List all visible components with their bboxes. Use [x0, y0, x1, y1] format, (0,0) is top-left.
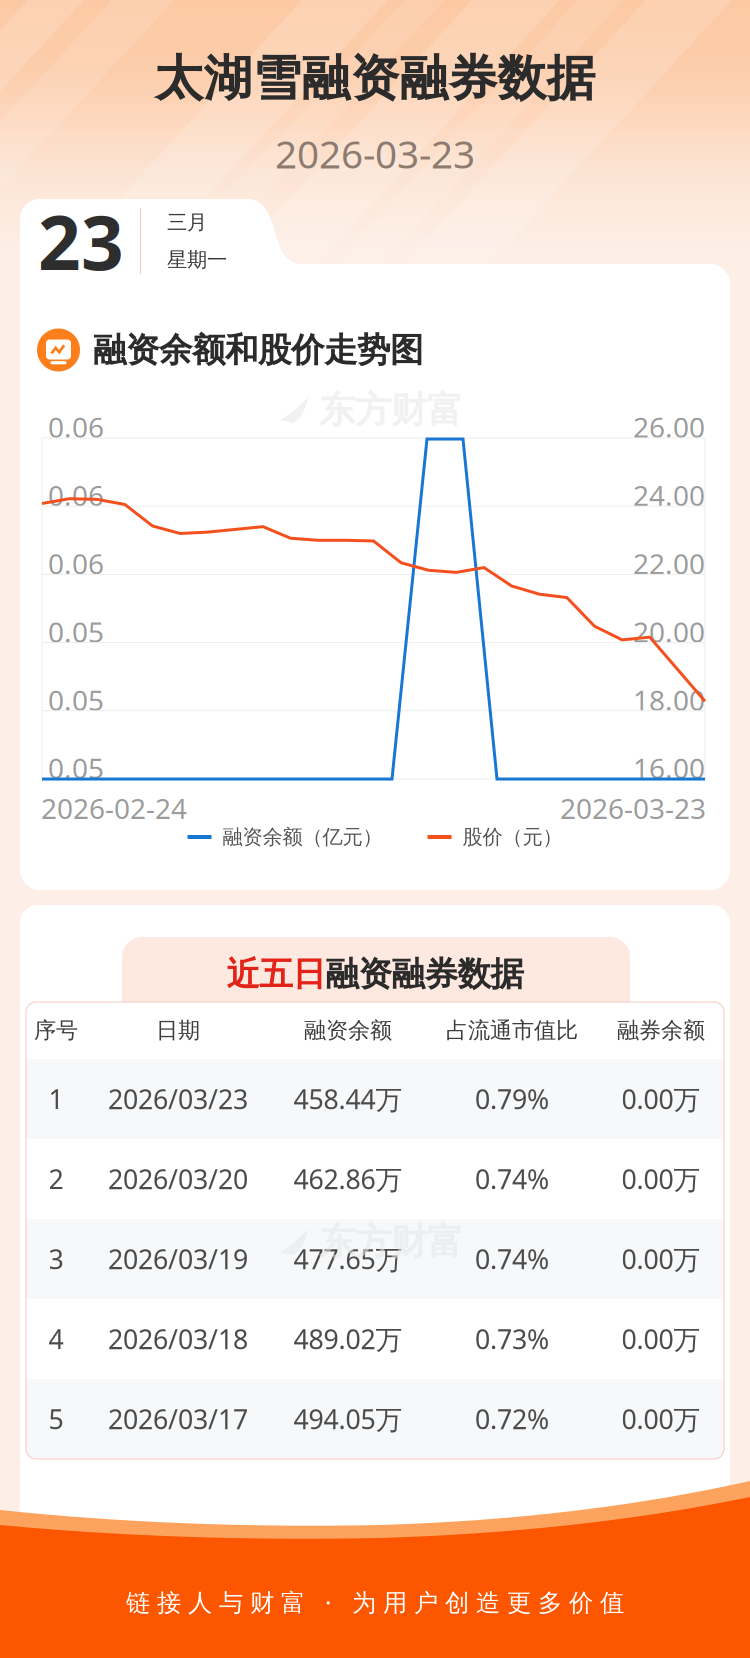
staticText: 融资融券数据: [325, 953, 523, 995]
staticText: 489.02万: [293, 1321, 402, 1357]
staticText: 2026/03/17: [108, 1401, 248, 1437]
staticText: 4: [48, 1321, 63, 1357]
staticText: 494.05万: [293, 1401, 402, 1437]
staticText: 太湖雪融资融券数据: [154, 48, 595, 109]
staticText: 东方财富: [319, 1219, 463, 1265]
staticText: 462.86万: [293, 1161, 402, 1197]
staticText: 日期: [156, 1017, 200, 1044]
staticText: 0.00万: [621, 1081, 700, 1117]
staticText: 近五日: [226, 953, 325, 995]
staticText: 2026/03/19: [108, 1241, 248, 1277]
staticText: 融资余额: [304, 1017, 392, 1044]
staticText: 23: [38, 190, 124, 292]
staticText: 0.05: [48, 681, 104, 719]
staticText: 16.00: [633, 749, 705, 787]
staticText: 融资余额（亿元）: [222, 824, 382, 850]
staticText: 24.00: [633, 476, 705, 514]
staticText: 0.00万: [621, 1401, 700, 1437]
staticText: 26.00: [633, 408, 705, 446]
staticText: 2026-02-24: [41, 789, 187, 827]
staticText: 477.65万: [293, 1241, 402, 1277]
staticText: 0.73%: [475, 1321, 549, 1357]
staticText: 1: [48, 1081, 63, 1117]
staticText: 三月: [167, 209, 207, 235]
staticText: 20.00: [633, 612, 705, 651]
staticText: 0.06: [48, 408, 104, 446]
staticText: 2026/03/18: [108, 1321, 248, 1357]
staticText: 0.74%: [475, 1161, 549, 1197]
staticText: 0.72%: [475, 1401, 549, 1437]
staticText: 0.74%: [475, 1241, 549, 1277]
staticText: 2026-03-23: [560, 789, 706, 827]
staticText: 0.05: [48, 612, 104, 651]
staticText: 0.00万: [621, 1321, 700, 1357]
staticText: 股价（元）: [462, 824, 562, 850]
staticText: 0.06: [48, 476, 104, 514]
staticText: 18.00: [633, 681, 705, 719]
staticText: 东方财富: [319, 387, 463, 433]
staticText: 序号: [34, 1017, 78, 1044]
staticText: 占流通市值比: [446, 1017, 578, 1044]
staticText: 458.44万: [293, 1081, 402, 1117]
staticText: 0.00万: [621, 1161, 700, 1197]
staticText: 星期一: [167, 247, 227, 272]
staticText: 2: [48, 1161, 63, 1197]
staticText: 2026-03-23: [275, 127, 475, 180]
staticText: 融券余额: [617, 1017, 705, 1044]
staticText: 融资余额和股价走势图: [93, 329, 423, 371]
staticText: 3: [48, 1241, 63, 1277]
staticText: 0.06: [48, 544, 104, 582]
staticText: 2026/03/20: [108, 1161, 248, 1197]
staticText: 5: [48, 1401, 63, 1437]
staticText: 0.00万: [621, 1241, 700, 1277]
staticText: 链接人与财富 · 为用户创造更多价值: [126, 1585, 624, 1619]
staticText: 0.05: [48, 749, 104, 787]
staticText: 0.79%: [475, 1081, 549, 1117]
staticText: 22.00: [633, 544, 705, 582]
staticText: 2026/03/23: [108, 1081, 248, 1117]
